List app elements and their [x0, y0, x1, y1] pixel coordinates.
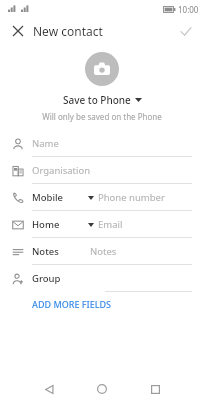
staticText: Email	[98, 218, 123, 231]
button[interactable]: Save to Phone	[63, 93, 142, 107]
button[interactable]: Name	[0, 130, 204, 157]
button[interactable]: Mobile	[0, 184, 204, 211]
staticText: Home	[32, 218, 60, 231]
staticText: 10:00	[178, 4, 199, 15]
staticText: New contact	[33, 23, 103, 39]
button[interactable]: ADD MORE FIELDS	[0, 292, 204, 316]
staticText: Mobile	[32, 191, 63, 204]
staticText: Organisation	[32, 164, 91, 177]
button[interactable]: Home	[89, 376, 115, 402]
button[interactable]: Notes	[0, 238, 204, 265]
staticText: Notes	[32, 245, 59, 258]
button[interactable]: Group	[0, 265, 204, 292]
staticText: ADD MORE FIELDS	[32, 298, 112, 310]
staticText: Will only be saved on the Phone	[42, 111, 162, 122]
button[interactable]: Home	[0, 211, 204, 238]
button[interactable]: Add photo	[85, 52, 119, 86]
button[interactable]: Recents	[142, 376, 168, 402]
staticText: Phone number	[98, 191, 165, 204]
button[interactable]: Close	[9, 22, 27, 40]
staticText: Group	[32, 272, 61, 285]
button[interactable]: Save contact	[177, 22, 195, 40]
staticText: Notes	[90, 245, 117, 258]
staticText: Name	[32, 137, 59, 150]
button[interactable]: Back	[36, 376, 62, 402]
staticText: Save to Phone	[63, 93, 131, 107]
button[interactable]: Organisation	[0, 157, 204, 184]
